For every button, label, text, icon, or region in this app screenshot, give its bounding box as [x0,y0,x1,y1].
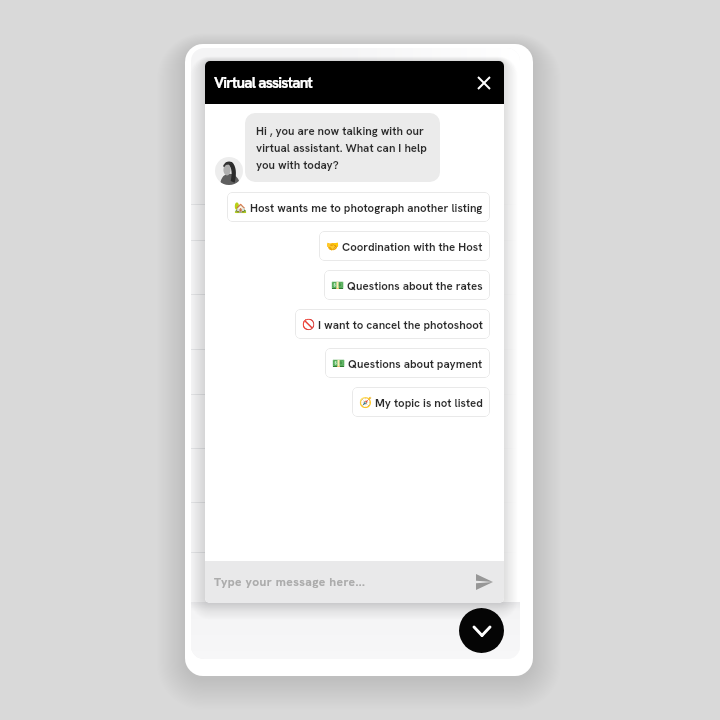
staticText: 🤝 [326,240,340,252]
staticText: My topic is not listed [375,395,483,410]
staticText: Type your message here... [214,574,366,590]
staticText: Questions about payment [348,356,483,371]
button[interactable]: Send [474,572,494,592]
button[interactable]: 🧭 [352,387,490,417]
staticText: Coordination with the Host [342,239,483,254]
staticText: Virtual assistant [214,73,313,93]
staticText: 💵 [331,279,345,291]
staticText: 🏡 [234,201,248,213]
button[interactable]: 💵 [325,348,490,378]
button[interactable]: 🚫 [295,309,490,339]
staticText: Hi , you are now talking with our virtua… [256,123,430,173]
staticText: 💵 [332,357,346,369]
button[interactable]: 🤝 [319,231,490,261]
button[interactable]: Minimise chat [459,608,504,653]
button[interactable]: 🏡 [227,192,490,222]
button[interactable]: Type your message here... [205,561,504,603]
staticText: Host wants me to photograph another list… [250,200,483,215]
staticText: I want to cancel the photoshoot [318,317,483,332]
staticText: 🚫 [302,318,316,330]
staticText: Questions about the rates [347,278,483,293]
staticText: 🧭 [359,396,373,408]
button[interactable]: Close [470,69,498,97]
button[interactable]: 💵 [324,270,490,300]
